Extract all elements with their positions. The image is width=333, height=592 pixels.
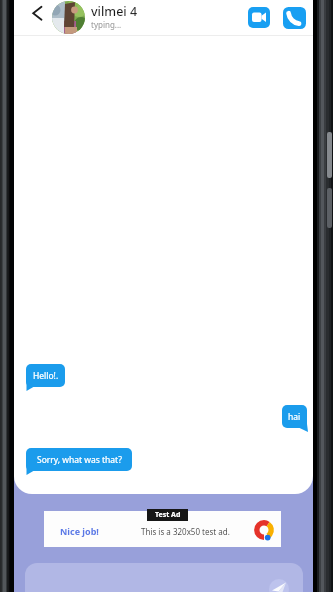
staticText: Test Ad: [155, 510, 181, 520]
button[interactable]: [25, 563, 303, 592]
button[interactable]: [26, 2, 50, 26]
button[interactable]: [52, 1, 85, 34]
staticText: vilmei 4: [91, 3, 138, 20]
button[interactable]: Hello!.: [26, 364, 65, 387]
staticText: Hello!.: [33, 370, 59, 382]
staticText: Sorry, what was that?: [37, 454, 122, 466]
button[interactable]: [248, 7, 270, 28]
staticText: typing...: [91, 19, 122, 30]
button[interactable]: Sorry, what was that?: [26, 448, 132, 471]
button[interactable]: [269, 579, 289, 592]
staticText: This is a 320x50 test ad.: [141, 526, 230, 537]
button[interactable]: Nice job!: [44, 511, 281, 547]
staticText: hai: [288, 411, 301, 423]
staticText: Nice job!: [60, 525, 99, 537]
button[interactable]: hai: [282, 405, 307, 428]
button[interactable]: [283, 7, 306, 29]
